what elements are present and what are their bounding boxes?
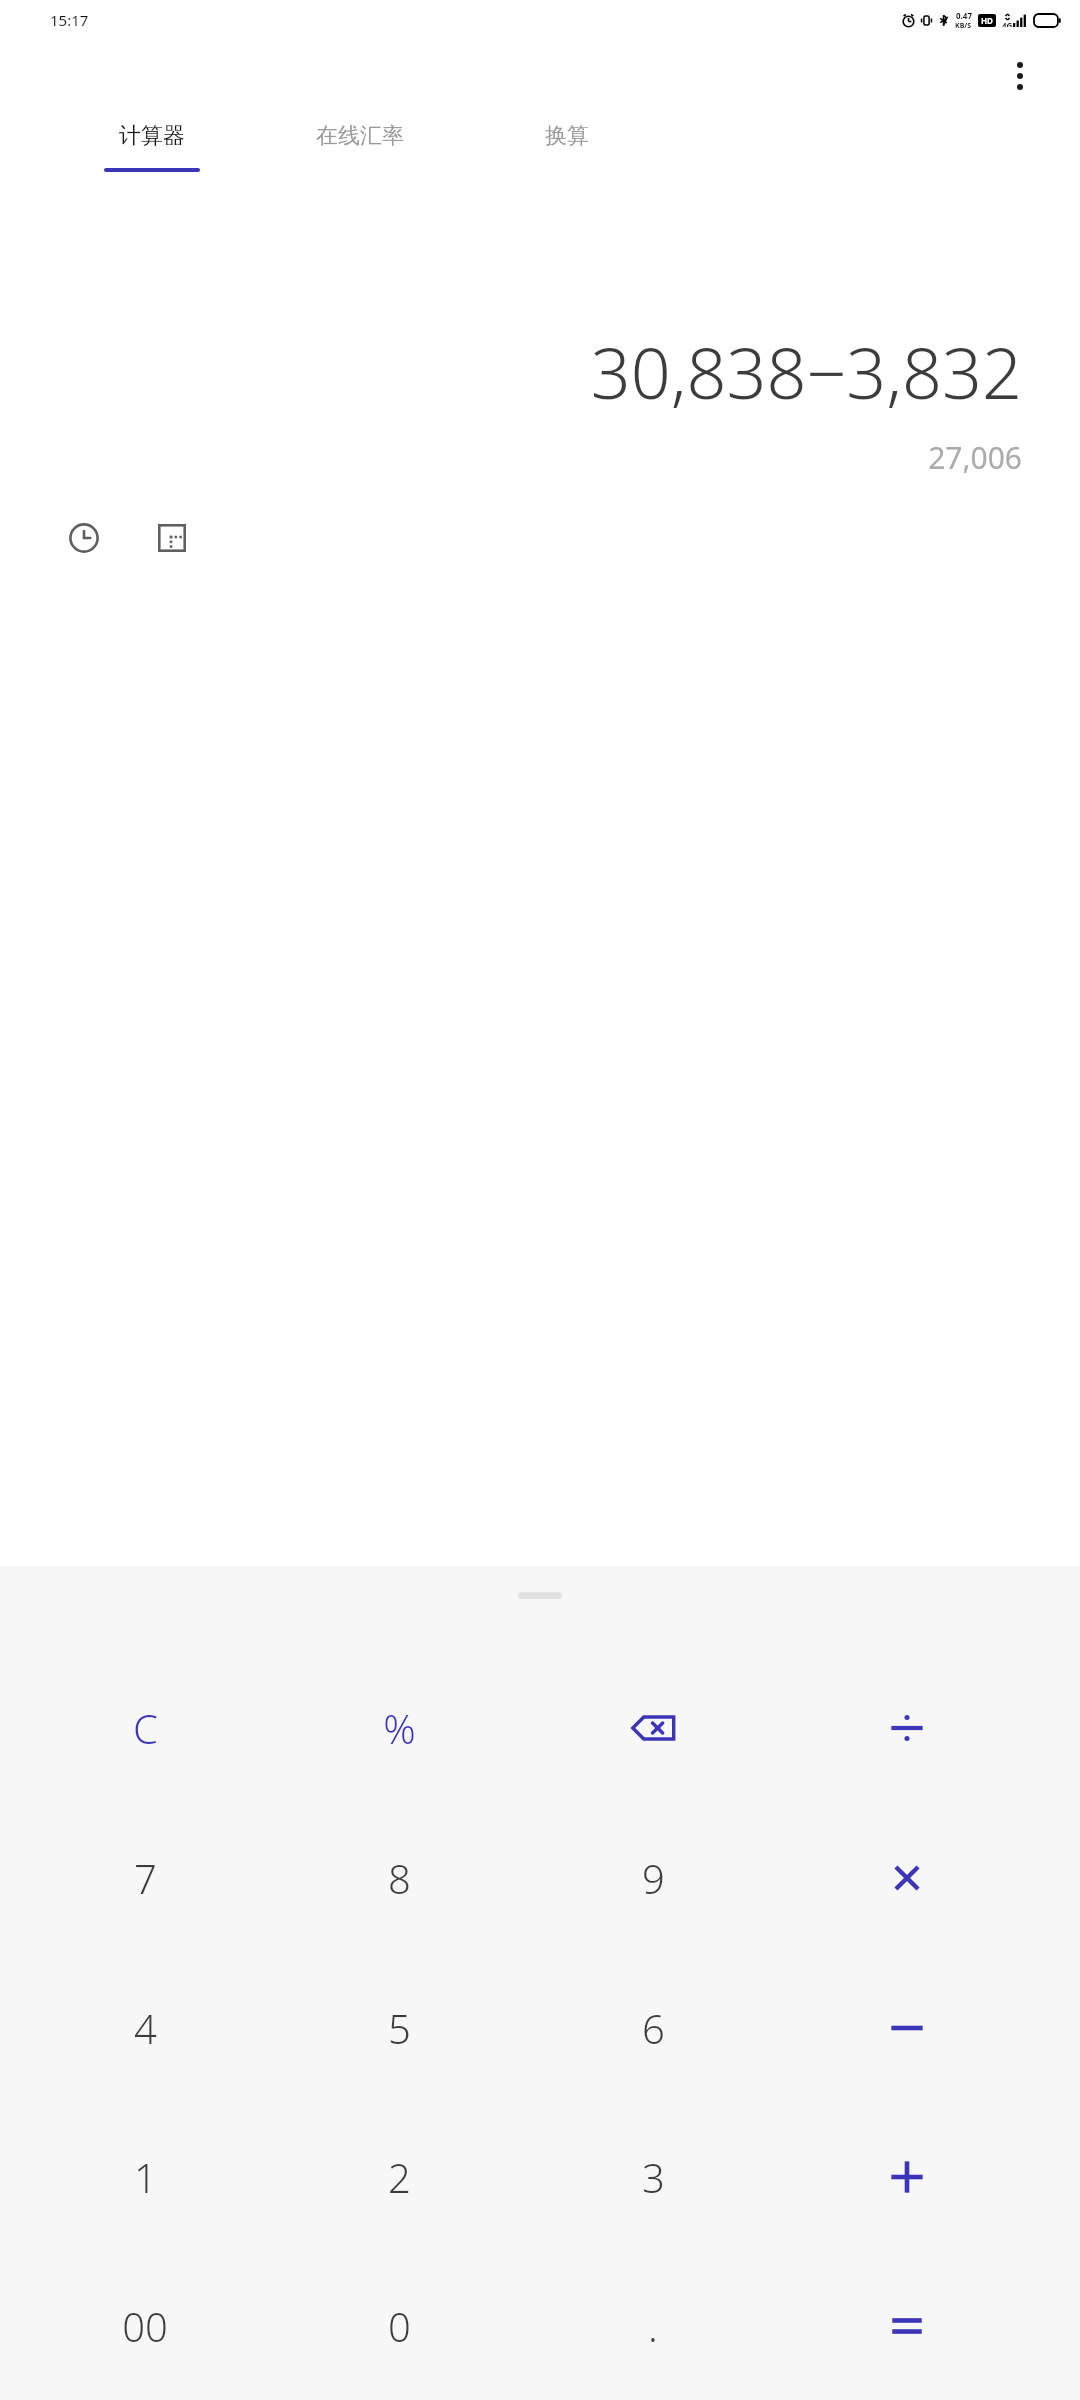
button[interactable]: 3 (526, 2102, 780, 2251)
button[interactable]: 0 (272, 2251, 526, 2400)
button[interactable]: 8 (272, 1803, 526, 1953)
staticText: 5 (388, 2001, 411, 2055)
staticText: HD (981, 15, 993, 26)
staticText: 2 (388, 2150, 411, 2204)
staticText: 15:17 (50, 10, 89, 30)
staticText: 00 (122, 2299, 168, 2353)
staticText: 3 (642, 2150, 665, 2204)
button[interactable]: 换算 (467, 112, 667, 194)
button[interactable]: Minus (780, 1953, 1034, 2102)
staticText: C (133, 1701, 158, 1755)
button[interactable]: 6 (526, 1953, 780, 2102)
staticText: KB/S (955, 21, 972, 31)
button[interactable]: Divide (780, 1653, 1034, 1803)
staticText: 7 (134, 1851, 157, 1905)
button[interactable]: Multiply (780, 1803, 1034, 1953)
staticText: 0.47 (956, 10, 972, 21)
staticText: 9 (642, 1851, 665, 1905)
button[interactable]: 7 (18, 1803, 272, 1953)
staticText: 4 (134, 2001, 157, 2055)
button[interactable]: Equals (780, 2251, 1034, 2400)
button[interactable]: 2 (272, 2102, 526, 2251)
staticText: % (383, 1701, 416, 1755)
button[interactable]: 在线汇率 (252, 112, 467, 194)
button[interactable]: Plus (780, 2102, 1034, 2251)
staticText: 在线汇率 (316, 122, 404, 150)
staticText: 1 (134, 2150, 157, 2204)
button[interactable]: 4 (18, 1953, 272, 2102)
button[interactable]: 00 (18, 2251, 272, 2400)
staticText: 0 (388, 2299, 411, 2353)
staticText: 30,838−3,832 (590, 324, 1022, 419)
button[interactable]: 计算器 (52, 112, 252, 194)
staticText: 27,006 (928, 437, 1022, 478)
button[interactable]: Backspace (526, 1653, 780, 1803)
staticText: . (648, 2299, 658, 2353)
button[interactable]: 9 (526, 1803, 780, 1953)
button[interactable]: 1 (18, 2102, 272, 2251)
staticText: 4G (1002, 20, 1013, 27)
button[interactable]: History (58, 512, 110, 564)
staticText: 计算器 (119, 122, 185, 150)
button[interactable]: 5 (272, 1953, 526, 2102)
button[interactable]: More options (996, 52, 1044, 100)
button[interactable]: % (272, 1653, 526, 1803)
staticText: 换算 (545, 122, 589, 150)
button[interactable]: Scientific mode (146, 512, 198, 564)
staticText: 8 (388, 1851, 411, 1905)
button[interactable]: C (18, 1653, 272, 1803)
staticText: 6 (642, 2001, 665, 2055)
